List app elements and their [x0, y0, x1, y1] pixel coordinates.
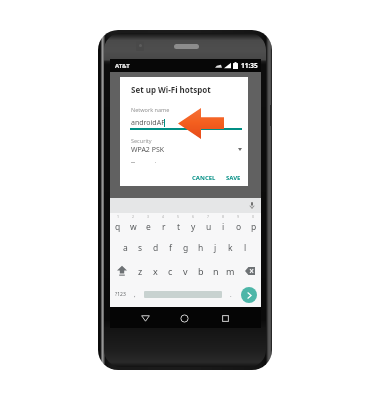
button[interactable]: g: [178, 236, 193, 259]
button[interactable]: Back: [135, 308, 155, 328]
button[interactable]: SAVE: [222, 170, 245, 186]
button[interactable]: s: [133, 236, 148, 259]
staticText: 8: [222, 214, 225, 219]
staticText: h: [198, 242, 204, 254]
button[interactable]: ,: [130, 282, 140, 307]
staticText: u: [206, 221, 212, 233]
button[interactable]: 1: [110, 213, 126, 236]
button[interactable]: c: [163, 259, 178, 282]
staticText: o: [236, 221, 242, 233]
staticText: 9: [237, 214, 240, 219]
staticText: t: [177, 221, 181, 233]
staticText: WPA2 PSK: [131, 145, 165, 155]
staticText: s: [138, 242, 143, 254]
button[interactable]: x: [148, 259, 163, 282]
staticText: b: [198, 265, 204, 277]
button[interactable]: f: [163, 236, 178, 259]
staticText: a: [123, 242, 128, 254]
button[interactable]: m: [223, 259, 238, 282]
staticText: .: [230, 291, 232, 299]
staticText: SAVE: [226, 174, 241, 182]
staticText: c: [168, 265, 173, 277]
staticText: y: [191, 221, 196, 233]
button[interactable]: CANCEL: [188, 170, 220, 186]
button[interactable]: Backspace: [238, 259, 261, 282]
button[interactable]: d: [148, 236, 163, 259]
staticText: 5: [177, 214, 180, 219]
staticText: 2: [132, 214, 135, 219]
staticText: n: [213, 265, 219, 277]
button[interactable]: 9: [231, 213, 246, 236]
button[interactable]: a: [118, 236, 133, 259]
button[interactable]: n: [208, 259, 223, 282]
button[interactable]: 5: [171, 213, 186, 236]
button[interactable]: Go: [236, 282, 261, 307]
staticText: x: [153, 265, 158, 277]
button[interactable]: l: [238, 236, 253, 259]
staticText: ,: [134, 291, 136, 299]
staticText: androidAP: [131, 118, 166, 128]
button[interactable]: Shift: [110, 259, 133, 282]
button[interactable]: z: [133, 259, 148, 282]
staticText: Network name: [131, 106, 170, 113]
button[interactable]: 3: [141, 213, 156, 236]
staticText: g: [183, 242, 189, 254]
staticText: k: [228, 242, 233, 254]
staticText: f: [169, 242, 172, 254]
staticText: r: [162, 221, 166, 233]
staticText: 4: [162, 214, 165, 219]
staticText: w: [130, 221, 137, 233]
staticText: l: [244, 242, 247, 254]
staticText: q: [115, 221, 121, 233]
staticText: d: [153, 242, 159, 254]
button[interactable]: v: [178, 259, 193, 282]
button[interactable]: 4: [156, 213, 171, 236]
staticText: e: [146, 221, 151, 233]
staticText: j: [214, 242, 217, 254]
staticText: v: [183, 265, 188, 277]
button[interactable]: b: [193, 259, 208, 282]
staticText: 1: [117, 214, 120, 219]
staticText: 3: [147, 214, 150, 219]
staticText: 11:35: [241, 61, 258, 70]
staticText: AT&T: [115, 62, 130, 70]
staticText: 7: [207, 214, 210, 219]
staticText: 6: [192, 214, 195, 219]
button[interactable]: .: [226, 282, 236, 307]
button[interactable]: Home: [174, 308, 194, 328]
button[interactable]: 7: [201, 213, 216, 236]
staticText: z: [138, 265, 143, 277]
button[interactable]: 6: [186, 213, 201, 236]
button[interactable]: Space: [140, 282, 226, 307]
staticText: Set up Wi-Fi hotspot: [131, 84, 211, 95]
staticText: Security: [131, 137, 152, 144]
button[interactable]: k: [223, 236, 238, 259]
staticText: ?123: [115, 291, 126, 298]
staticText: m: [226, 265, 235, 277]
button[interactable]: 8: [216, 213, 231, 236]
staticText: 0: [252, 214, 255, 219]
button[interactable]: h: [193, 236, 208, 259]
button[interactable]: Recents: [215, 308, 235, 328]
button[interactable]: j: [208, 236, 223, 259]
staticText: p: [251, 221, 257, 233]
button[interactable]: 2: [126, 213, 141, 236]
button[interactable]: ?123: [110, 282, 130, 307]
staticText: i: [222, 221, 225, 233]
button[interactable]: 0: [246, 213, 261, 236]
staticText: CANCEL: [192, 174, 216, 182]
